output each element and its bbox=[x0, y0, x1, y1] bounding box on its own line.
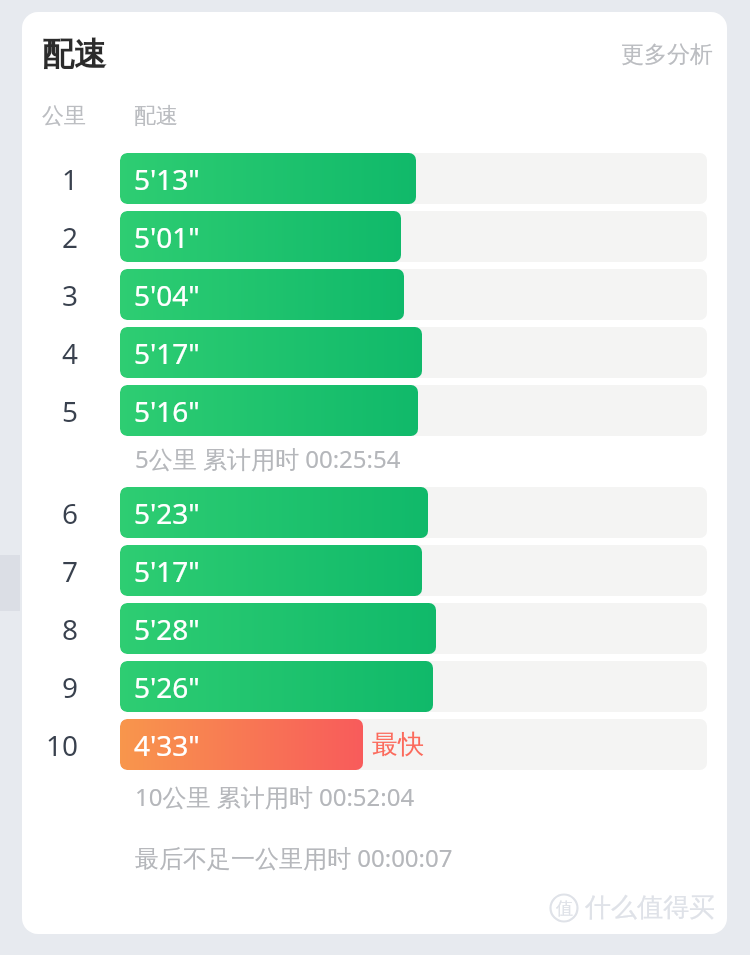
staticText: 5公里 累计用时 00:25:54 bbox=[135, 442, 401, 475]
staticText: 5'04" bbox=[134, 276, 200, 314]
staticText: 6 bbox=[61, 494, 78, 532]
staticText: 9 bbox=[61, 668, 78, 706]
button[interactable]: 5 bbox=[22, 385, 727, 436]
staticText: 5'13" bbox=[134, 160, 200, 198]
staticText: 值 bbox=[556, 898, 573, 919]
staticText: 5'17" bbox=[134, 552, 200, 590]
staticText: 配速 bbox=[42, 34, 106, 74]
staticText: 3 bbox=[61, 276, 78, 314]
staticText: 更多分析 bbox=[621, 40, 713, 69]
staticText: 5'23" bbox=[134, 494, 200, 532]
button[interactable]: 3 bbox=[22, 269, 727, 320]
button[interactable]: 2 bbox=[22, 211, 727, 262]
staticText: 10 bbox=[45, 726, 78, 764]
staticText: 8 bbox=[61, 610, 78, 648]
staticText: 配速 bbox=[134, 102, 178, 130]
staticText: 5'16" bbox=[134, 392, 200, 430]
button[interactable]: 更多分析 bbox=[607, 32, 727, 77]
button[interactable]: 6 bbox=[22, 487, 727, 538]
staticText: 1 bbox=[61, 160, 78, 198]
staticText: 7 bbox=[61, 552, 78, 590]
button[interactable]: 9 bbox=[22, 661, 727, 712]
staticText: 4'33" bbox=[134, 726, 200, 764]
staticText: 5'28" bbox=[134, 610, 200, 648]
button[interactable]: 8 bbox=[22, 603, 727, 654]
staticText: 什么值得买 bbox=[585, 891, 715, 924]
staticText: 最后不足一公里用时 00:00:07 bbox=[135, 841, 453, 874]
staticText: 5'01" bbox=[134, 218, 200, 256]
staticText: 4 bbox=[61, 334, 78, 372]
staticText: 最快 bbox=[372, 728, 424, 761]
button[interactable]: 10 bbox=[22, 719, 727, 770]
staticText: 5 bbox=[61, 392, 78, 430]
staticText: 5'17" bbox=[134, 334, 200, 372]
staticText: 10公里 累计用时 00:52:04 bbox=[135, 780, 415, 813]
staticText: 2 bbox=[61, 218, 78, 256]
button[interactable]: 7 bbox=[22, 545, 727, 596]
staticText: 5'26" bbox=[134, 668, 200, 706]
button[interactable]: 4 bbox=[22, 327, 727, 378]
button[interactable]: 1 bbox=[22, 153, 727, 204]
staticText: 公里 bbox=[42, 102, 86, 130]
